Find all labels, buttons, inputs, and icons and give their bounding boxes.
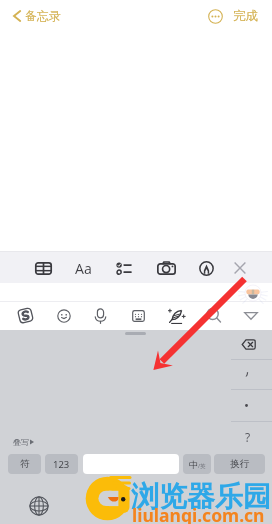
button[interactable]: Keyboard bbox=[125, 302, 152, 329]
staticText: liulanqi.com.cn bbox=[132, 503, 265, 524]
staticText: 符 bbox=[20, 458, 30, 470]
staticText: 中 bbox=[189, 459, 198, 470]
button[interactable]: 换行 bbox=[214, 454, 265, 474]
button[interactable]: Search bbox=[199, 301, 226, 328]
button[interactable]: 中 bbox=[183, 454, 211, 474]
staticText: 备忘录 bbox=[25, 8, 61, 23]
button[interactable]: 123 bbox=[45, 454, 78, 474]
staticText: /英 bbox=[198, 462, 206, 470]
button[interactable]: Delete bbox=[231, 330, 272, 359]
button[interactable]: Comma bbox=[231, 360, 272, 389]
button[interactable]: 叠写 bbox=[13, 437, 34, 447]
button[interactable]: Text format bbox=[70, 255, 96, 281]
button[interactable]: Camera bbox=[153, 255, 179, 281]
staticText: 123 bbox=[53, 458, 70, 471]
staticText: ? bbox=[245, 429, 251, 445]
button[interactable]: Handwriting bbox=[162, 302, 189, 329]
button[interactable]: Emoji bbox=[50, 302, 77, 329]
button[interactable]: Hide keyboard bbox=[237, 302, 264, 329]
button[interactable]: Close keyboard bbox=[227, 255, 253, 281]
button[interactable]: Voice input bbox=[87, 302, 114, 329]
button[interactable]: Space bbox=[83, 454, 179, 474]
button[interactable]: Switch language bbox=[28, 495, 49, 516]
button[interactable]: Insert table bbox=[30, 255, 56, 281]
staticText: Aa bbox=[75, 259, 92, 278]
button[interactable]: Markup bbox=[193, 255, 219, 281]
button[interactable]: Period bbox=[231, 390, 272, 421]
button[interactable]: 备忘录 bbox=[13, 8, 61, 23]
button[interactable]: More options bbox=[207, 8, 223, 24]
staticText: 叠写 bbox=[13, 437, 29, 447]
button[interactable]: 符 bbox=[8, 454, 41, 474]
staticText: 换行 bbox=[230, 458, 249, 470]
staticText: 浏览器乐园 bbox=[131, 479, 271, 514]
button[interactable]: Checklist bbox=[110, 255, 136, 281]
staticText: 完成 bbox=[233, 8, 258, 24]
button[interactable]: 完成 bbox=[233, 8, 258, 24]
button[interactable]: ? bbox=[231, 422, 272, 451]
button[interactable]: Sogou input bbox=[12, 302, 39, 329]
